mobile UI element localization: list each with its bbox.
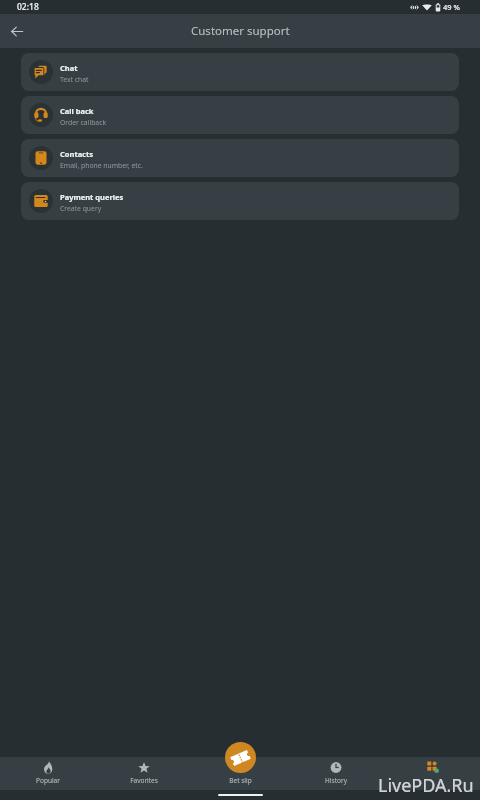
staticText: Payment queries <box>60 192 124 202</box>
button[interactable]: Contacts <box>21 139 459 177</box>
staticText: History <box>325 776 347 785</box>
staticText: Bet slip <box>229 776 252 785</box>
button[interactable]: Popular <box>0 757 96 790</box>
staticText: 49 % <box>443 2 460 12</box>
button[interactable]: Bet slip <box>192 757 288 790</box>
staticText: Favorites <box>130 776 158 785</box>
staticText: Text chat <box>60 75 89 84</box>
staticText: LivePDA.Ru <box>378 773 474 798</box>
staticText: Contacts <box>60 149 94 159</box>
button[interactable]: Call back <box>21 96 459 134</box>
button[interactable]: Favorites <box>96 757 192 790</box>
button[interactable]: History <box>288 757 384 790</box>
staticText: Chat <box>60 63 78 73</box>
button[interactable]: More <box>384 757 480 790</box>
staticText: Order callback <box>60 118 107 127</box>
button[interactable]: Chat <box>21 53 459 91</box>
staticText: Customer support <box>191 23 290 39</box>
button[interactable]: Back <box>0 14 34 48</box>
staticText: Create query <box>60 204 102 213</box>
staticText: 02:18 <box>17 1 39 13</box>
staticText: Popular <box>36 776 60 785</box>
button[interactable]: Bet slip <box>225 742 256 773</box>
staticText: Call back <box>60 106 94 116</box>
staticText: Email, phone number, etc. <box>60 161 143 170</box>
button[interactable]: Payment queries <box>21 182 459 220</box>
